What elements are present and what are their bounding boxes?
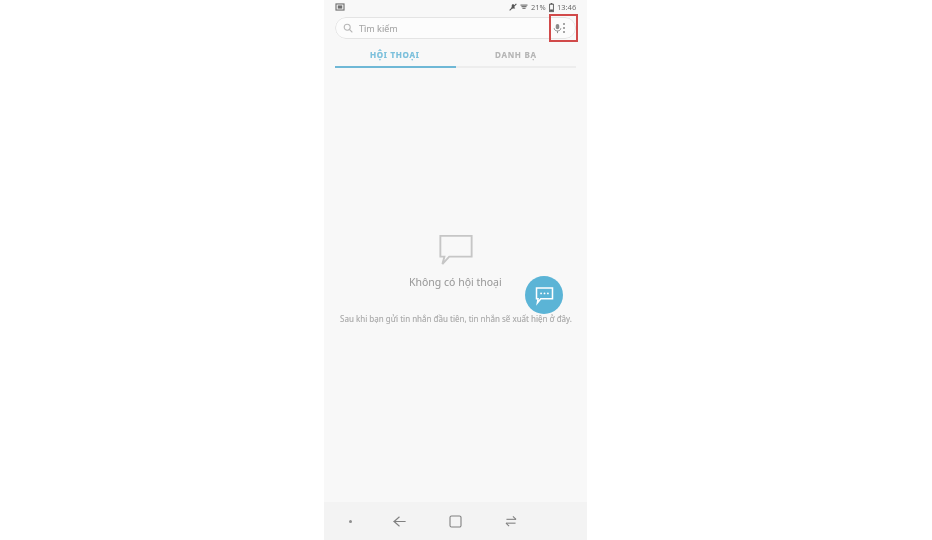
button[interactable]: Recent apps (483, 502, 539, 540)
button[interactable]: HỘI THOẠI (335, 42, 455, 66)
staticText: 13:46 (557, 2, 577, 12)
staticText: Không có hội thoại (409, 275, 502, 289)
button[interactable]: Voice search (547, 18, 567, 38)
button[interactable]: Hide keyboard (330, 502, 371, 540)
staticText: Tìm kiếm (359, 22, 398, 34)
staticText: HỘI THOẠI (370, 49, 420, 60)
staticText: 21% (531, 2, 546, 12)
button[interactable]: Back (371, 502, 427, 540)
button[interactable]: Tìm kiếm (335, 17, 576, 39)
button[interactable]: DANH BẠ (455, 42, 576, 66)
staticText: DANH BẠ (495, 49, 537, 60)
staticText: Sau khi bạn gửi tin nhắn đầu tiên, tin n… (340, 313, 572, 324)
button[interactable]: Home (427, 502, 483, 540)
button[interactable]: More options (549, 14, 578, 42)
button[interactable]: New conversation (525, 276, 563, 314)
